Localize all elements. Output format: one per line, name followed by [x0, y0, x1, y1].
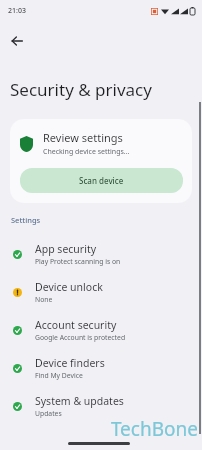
staticText: Review settings [43, 130, 123, 145]
staticText: App security [35, 242, 97, 256]
button[interactable]: Scan device [20, 168, 183, 193]
button[interactable]: Device finders [0, 349, 202, 387]
staticText: Google Account is protected [35, 333, 126, 342]
staticText: Scan device [79, 175, 124, 186]
button[interactable]: System & updates [0, 387, 202, 425]
staticText: Security & privacy [10, 78, 152, 101]
staticText: Device finders [35, 356, 105, 370]
staticText: Checking device settings... [43, 147, 130, 157]
staticText: Account security [35, 318, 117, 332]
staticText: System & updates [35, 394, 124, 408]
staticText: Play Protect scanning is on [35, 257, 121, 266]
staticText: Find My Device [35, 371, 83, 380]
staticText: None [35, 295, 53, 304]
staticText: TechBone [110, 416, 198, 442]
button[interactable]: Device unlock [0, 273, 202, 311]
button[interactable]: Back [4, 28, 30, 54]
staticText: Settings [11, 215, 41, 225]
button[interactable]: Account security [0, 311, 202, 349]
button[interactable]: App security [0, 235, 202, 273]
staticText: Device unlock [35, 280, 103, 294]
staticText: Updates [35, 409, 62, 418]
staticText: 21:03 [8, 6, 26, 16]
